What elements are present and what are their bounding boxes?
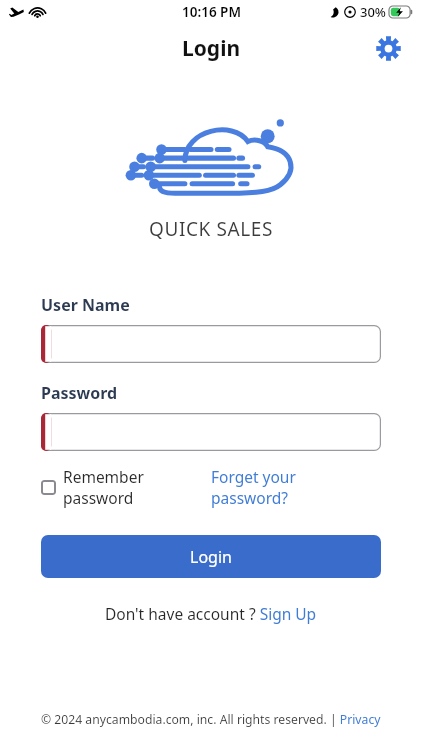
staticText: Remember password — [63, 466, 144, 509]
staticText: User Name — [41, 294, 130, 316]
staticText: Forget your password? — [211, 466, 296, 509]
staticText: 10:16 PM — [182, 3, 241, 21]
button[interactable]: Settings — [368, 28, 408, 68]
button[interactable]: Remember password — [41, 466, 211, 509]
staticText: QUICK SALES — [0, 216, 422, 242]
button[interactable]: Don't have account ? Sign Up — [41, 603, 381, 624]
staticText: Login — [182, 34, 241, 63]
button[interactable]: Forget your password? — [211, 466, 296, 509]
button[interactable] — [41, 413, 381, 451]
staticText: 30% — [360, 3, 386, 21]
staticText: Login — [190, 546, 232, 568]
staticText: Password — [41, 382, 118, 404]
button[interactable]: Login — [41, 535, 381, 578]
staticText: © 2024 anycambodia.com, inc. All rights … — [41, 711, 381, 728]
staticText: Don't have account ? Sign Up — [105, 603, 317, 624]
button[interactable] — [41, 325, 381, 363]
